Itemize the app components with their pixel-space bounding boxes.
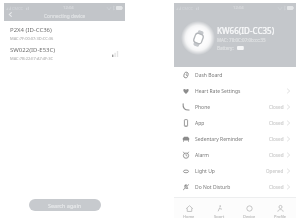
staticText: Opened [266, 168, 284, 174]
staticText: Closed [269, 136, 284, 142]
button[interactable]: SW022(ID-E53C) [4, 46, 125, 61]
other: Back [7, 11, 14, 18]
button[interactable]: Alarm [174, 147, 296, 163]
button[interactable]: Dash Board [174, 67, 296, 83]
staticText: Light Up [195, 168, 215, 175]
button[interactable]: Device [234, 198, 265, 218]
button[interactable]: Search again [29, 199, 101, 211]
staticText: 12:04 [63, 5, 74, 11]
staticText: KW66(ID-CC35) [217, 25, 275, 36]
button[interactable]: App [174, 115, 296, 131]
staticText: Closed [269, 120, 284, 126]
staticText: Alarm [195, 152, 210, 159]
staticText: Battery: [217, 45, 234, 51]
button[interactable]: Sedentary Reminder [174, 131, 296, 147]
button[interactable]: Profile [265, 198, 296, 218]
staticText: Dash Board [195, 72, 223, 79]
staticText: MAC:7B:22:E7:A7:4F:3C [10, 56, 54, 61]
staticText: Sedentary Reminder [195, 136, 244, 143]
staticText: Connecting device [44, 13, 86, 20]
staticText: App [195, 120, 205, 127]
staticText: Sport [214, 214, 225, 218]
staticText: SW022(ID-E53C) [10, 46, 56, 54]
button[interactable]: Light Up [174, 163, 296, 179]
button[interactable]: P2X4 (ID-CC36) [4, 26, 125, 41]
staticText: MAC:7F:00:07:3D:CC:36 [10, 36, 54, 41]
staticText: Closed [269, 184, 284, 190]
button[interactable]: Heart Rate Settings [174, 83, 296, 99]
staticText: Do Not Disturb [195, 184, 231, 191]
button[interactable]: Home [174, 198, 204, 218]
button[interactable]: Sport [204, 198, 234, 218]
staticText: Search again [48, 202, 82, 209]
staticText: Closed [269, 152, 284, 158]
staticText: Device [243, 214, 256, 218]
staticText: Heart Rate Settings [195, 88, 241, 95]
staticText: CMCC [12, 6, 24, 11]
staticText: Phone [195, 104, 211, 111]
button[interactable]: Do Not Disturb [174, 179, 296, 195]
staticText: 12:04 [233, 5, 244, 11]
staticText: Profile [274, 214, 287, 218]
staticText: MAC: 78:0C:07:0b:cc:35 [217, 37, 266, 43]
staticText: Closed [269, 104, 284, 110]
staticText: P2X4 (ID-CC36) [10, 26, 52, 34]
button[interactable]: Phone [174, 99, 296, 115]
staticText: Home [183, 214, 195, 218]
